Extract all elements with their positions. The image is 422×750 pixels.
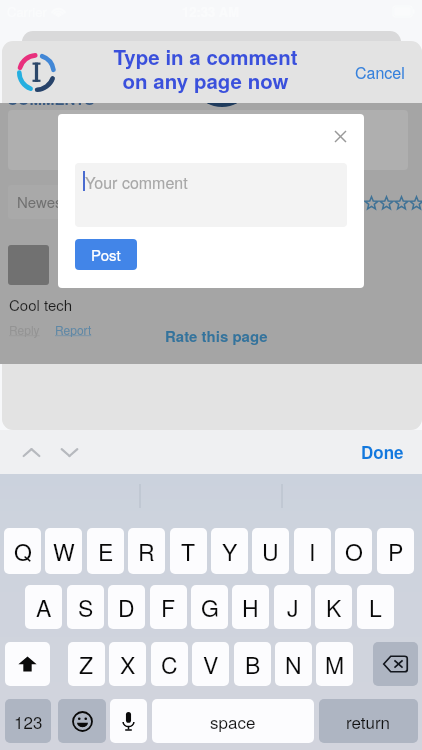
button[interactable]: Cancel bbox=[355, 61, 405, 84]
staticText: J bbox=[287, 591, 299, 624]
other: Shift bbox=[18, 655, 37, 673]
button[interactable]: I bbox=[294, 528, 331, 574]
button[interactable]: Backspace bbox=[373, 642, 418, 686]
staticText: 123 bbox=[14, 709, 43, 733]
staticText: D bbox=[118, 591, 135, 624]
staticText: R bbox=[138, 535, 155, 568]
button[interactable]: Report bbox=[55, 321, 92, 338]
staticText: H bbox=[242, 591, 259, 624]
staticText: G bbox=[201, 591, 219, 624]
staticText: E bbox=[98, 535, 114, 568]
staticText: I bbox=[309, 535, 316, 568]
button[interactable]: G bbox=[191, 585, 228, 629]
button[interactable]: Emoji bbox=[58, 699, 106, 743]
other: Dictate bbox=[121, 711, 136, 731]
staticText: return bbox=[346, 709, 391, 733]
staticText: F bbox=[161, 591, 176, 624]
staticText: COMMENTS bbox=[7, 103, 95, 109]
button[interactable]: D bbox=[108, 585, 145, 629]
staticText: Done bbox=[361, 440, 404, 464]
button[interactable]: Newest bbox=[8, 185, 88, 219]
staticText: Post bbox=[91, 244, 121, 265]
staticText: Type in a comment on any page now bbox=[113, 42, 298, 95]
button[interactable]: A bbox=[25, 585, 62, 629]
staticText: A bbox=[36, 591, 52, 624]
button[interactable]: W bbox=[45, 528, 82, 574]
staticText: O bbox=[345, 535, 363, 568]
staticText: Newest bbox=[17, 191, 67, 212]
staticText: X bbox=[120, 648, 136, 681]
button[interactable]: Your comment bbox=[75, 163, 347, 227]
button[interactable]: V bbox=[192, 642, 229, 686]
staticText: C bbox=[161, 648, 178, 681]
button[interactable]: Q bbox=[4, 528, 41, 574]
button[interactable]: S bbox=[67, 585, 104, 629]
button[interactable]: X bbox=[109, 642, 146, 686]
button[interactable]: Close bbox=[324, 120, 356, 152]
button[interactable]: Next field bbox=[52, 435, 86, 469]
staticText: V bbox=[203, 648, 219, 681]
other: Backspace bbox=[383, 655, 408, 673]
staticText: Y bbox=[222, 535, 238, 568]
button[interactable]: M bbox=[316, 642, 353, 686]
staticText: Your comment bbox=[85, 171, 188, 194]
staticText: Cancel bbox=[355, 61, 405, 84]
button[interactable]: P bbox=[377, 528, 414, 574]
button[interactable]: F bbox=[150, 585, 187, 629]
staticText: W bbox=[53, 535, 75, 568]
staticText: space bbox=[210, 709, 256, 733]
staticText: U bbox=[262, 535, 279, 568]
button[interactable]: B bbox=[234, 642, 271, 686]
button[interactable]: 123 bbox=[5, 699, 51, 743]
staticText: Cool tech bbox=[9, 294, 73, 315]
staticText: T bbox=[181, 535, 196, 568]
button[interactable]: return bbox=[319, 699, 418, 743]
button[interactable]: U bbox=[252, 528, 289, 574]
staticText: N bbox=[285, 648, 302, 681]
button[interactable]: H bbox=[232, 585, 269, 629]
button[interactable]: E bbox=[87, 528, 124, 574]
button[interactable]: T bbox=[170, 528, 207, 574]
other: Emoji bbox=[72, 711, 93, 732]
button[interactable]: L bbox=[357, 585, 394, 629]
button[interactable]: O bbox=[335, 528, 372, 574]
button[interactable]: R bbox=[128, 528, 165, 574]
button[interactable]: Y bbox=[211, 528, 248, 574]
button[interactable]: J bbox=[274, 585, 311, 629]
button[interactable]: C bbox=[151, 642, 188, 686]
button[interactable]: N bbox=[275, 642, 312, 686]
button[interactable]: Post bbox=[75, 239, 137, 270]
staticText: S bbox=[78, 591, 94, 624]
button[interactable]: Shift bbox=[5, 642, 50, 686]
staticText: P bbox=[388, 535, 404, 568]
staticText: B bbox=[245, 648, 261, 681]
staticText: K bbox=[326, 591, 342, 624]
staticText: Z bbox=[79, 648, 94, 681]
button[interactable]: space bbox=[152, 699, 314, 743]
button[interactable]: Previous field bbox=[14, 435, 48, 469]
button[interactable]: Reply bbox=[9, 321, 40, 338]
button[interactable]: K bbox=[315, 585, 352, 629]
staticText: M bbox=[325, 648, 345, 681]
staticText: Q bbox=[14, 535, 32, 568]
button[interactable]: Dictate bbox=[110, 699, 147, 743]
button[interactable]: Z bbox=[68, 642, 105, 686]
staticText: L bbox=[369, 591, 382, 624]
button[interactable]: Done bbox=[361, 440, 404, 464]
button[interactable]: Rate this page bbox=[165, 325, 268, 346]
